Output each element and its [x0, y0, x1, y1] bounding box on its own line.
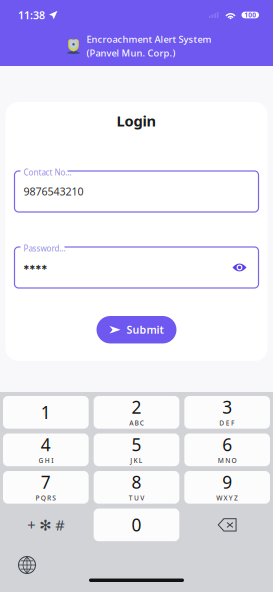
button[interactable]: 1: [3, 396, 89, 429]
staticText: ✱✱✱✱: [23, 264, 47, 271]
button[interactable]: 5: [94, 433, 179, 466]
staticText: 8: [131, 470, 141, 493]
staticText: PQRS: [35, 493, 56, 502]
staticText: 7: [41, 470, 51, 493]
button[interactable]: 9: [184, 471, 270, 504]
staticText: MNO: [218, 456, 236, 465]
button[interactable]: 3: [184, 396, 270, 429]
staticText: Contact No...: [23, 167, 71, 178]
staticText: DEF: [219, 418, 235, 427]
staticText: 2: [131, 395, 141, 418]
button[interactable]: 2: [94, 396, 179, 429]
staticText: 6: [222, 433, 232, 456]
staticText: GHI: [38, 456, 53, 465]
staticText: WXYZ: [216, 493, 238, 502]
staticText: 5: [131, 433, 141, 456]
staticText: 100: [244, 11, 256, 19]
button[interactable]: Next keyboard: [3, 552, 51, 578]
staticText: JKL: [130, 456, 143, 465]
button[interactable]: Submit: [96, 316, 176, 343]
staticText: 1: [41, 401, 51, 424]
button[interactable]: 6: [184, 433, 270, 466]
staticText: 4: [41, 433, 51, 456]
button[interactable]: Delete: [184, 508, 270, 541]
staticText: (Panvel Mun. Corp.): [86, 47, 175, 59]
staticText: TUV: [129, 493, 144, 502]
staticText: Password...: [23, 243, 65, 254]
button[interactable]: 7: [3, 471, 89, 504]
staticText: 9: [222, 470, 232, 493]
staticText: Login: [116, 111, 156, 130]
staticText: + ✻ #: [27, 515, 64, 535]
button[interactable]: 0: [94, 508, 179, 541]
staticText: 3: [222, 395, 232, 418]
staticText: Submit: [126, 323, 163, 337]
staticText: ABC: [129, 418, 144, 427]
staticText: Encroachment Alert System: [86, 33, 211, 45]
staticText: 9876543210: [23, 184, 83, 199]
staticText: 11:38: [18, 8, 45, 22]
button[interactable]: Show password: [229, 257, 249, 277]
staticText: 0: [131, 513, 141, 536]
button[interactable]: Symbols: [3, 508, 89, 541]
button[interactable]: 4: [3, 433, 89, 466]
button[interactable]: 8: [94, 471, 179, 504]
